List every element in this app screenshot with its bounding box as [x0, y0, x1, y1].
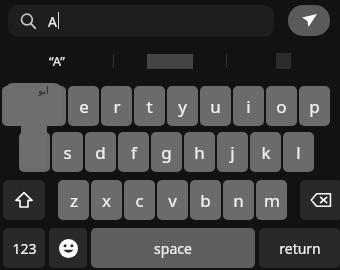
button[interactable]: v	[157, 180, 188, 220]
staticText: o	[276, 95, 287, 118]
button[interactable]: w	[35, 86, 66, 126]
staticText: t	[146, 95, 153, 118]
button[interactable]: k	[250, 132, 281, 172]
button[interactable]: x	[91, 180, 122, 220]
staticText: m	[264, 189, 280, 212]
button[interactable]	[227, 46, 340, 76]
staticText: s	[63, 141, 72, 164]
button[interactable]: l	[283, 132, 314, 172]
button[interactable]: z	[58, 180, 89, 220]
staticText: “A”	[49, 52, 65, 70]
button[interactable]: y	[167, 86, 198, 126]
staticText: e	[79, 95, 89, 118]
button[interactable]: n	[223, 180, 254, 220]
button[interactable]: c	[124, 180, 155, 220]
button[interactable]: h	[184, 132, 215, 172]
staticText: p	[309, 95, 320, 118]
button[interactable]: space	[91, 228, 255, 268]
staticText: j	[230, 141, 235, 164]
button[interactable]	[114, 46, 226, 76]
button[interactable]: i	[233, 86, 264, 126]
button[interactable]: return	[259, 228, 340, 268]
staticText: 123	[12, 239, 37, 258]
staticText: c	[135, 189, 144, 212]
button[interactable]: d	[85, 132, 116, 172]
staticText: h	[194, 141, 205, 164]
button[interactable]: b	[190, 180, 221, 220]
staticText: u	[210, 95, 221, 118]
button[interactable]: 123	[3, 228, 45, 268]
staticText: d	[95, 141, 106, 164]
staticText: r	[113, 95, 121, 118]
button[interactable]: s	[52, 132, 83, 172]
button[interactable]: o	[266, 86, 297, 126]
staticText: i	[246, 95, 251, 118]
button[interactable]: a	[19, 132, 50, 172]
button[interactable]: A	[8, 5, 274, 37]
button[interactable]: m	[256, 180, 287, 220]
button[interactable]: p	[299, 86, 330, 126]
staticText: return	[279, 239, 321, 258]
staticText: b	[200, 189, 211, 212]
button[interactable]: r	[101, 86, 132, 126]
staticText: g	[161, 141, 172, 164]
staticText: y	[178, 95, 187, 118]
button[interactable]: “A”	[0, 46, 113, 76]
button[interactable]: Shift	[3, 180, 45, 220]
staticText: x	[102, 189, 111, 212]
staticText: v	[168, 189, 177, 212]
button[interactable]: g	[151, 132, 182, 172]
staticText: space	[154, 239, 192, 258]
button[interactable]: e	[68, 86, 99, 126]
staticText: z	[70, 189, 78, 212]
staticText: ابو	[38, 85, 49, 97]
button[interactable]: Backspace	[300, 180, 340, 220]
button[interactable]: Emoji	[49, 228, 87, 268]
button[interactable]: u	[200, 86, 231, 126]
button[interactable]: q	[2, 86, 33, 126]
staticText: n	[233, 189, 244, 212]
button[interactable]: j	[217, 132, 248, 172]
button[interactable]: t	[134, 86, 165, 126]
staticText: k	[261, 141, 271, 164]
staticText: l	[296, 141, 301, 164]
staticText: A	[48, 12, 57, 31]
button[interactable]: Send	[288, 5, 330, 36]
button[interactable]: f	[118, 132, 149, 172]
staticText: f	[131, 141, 137, 164]
